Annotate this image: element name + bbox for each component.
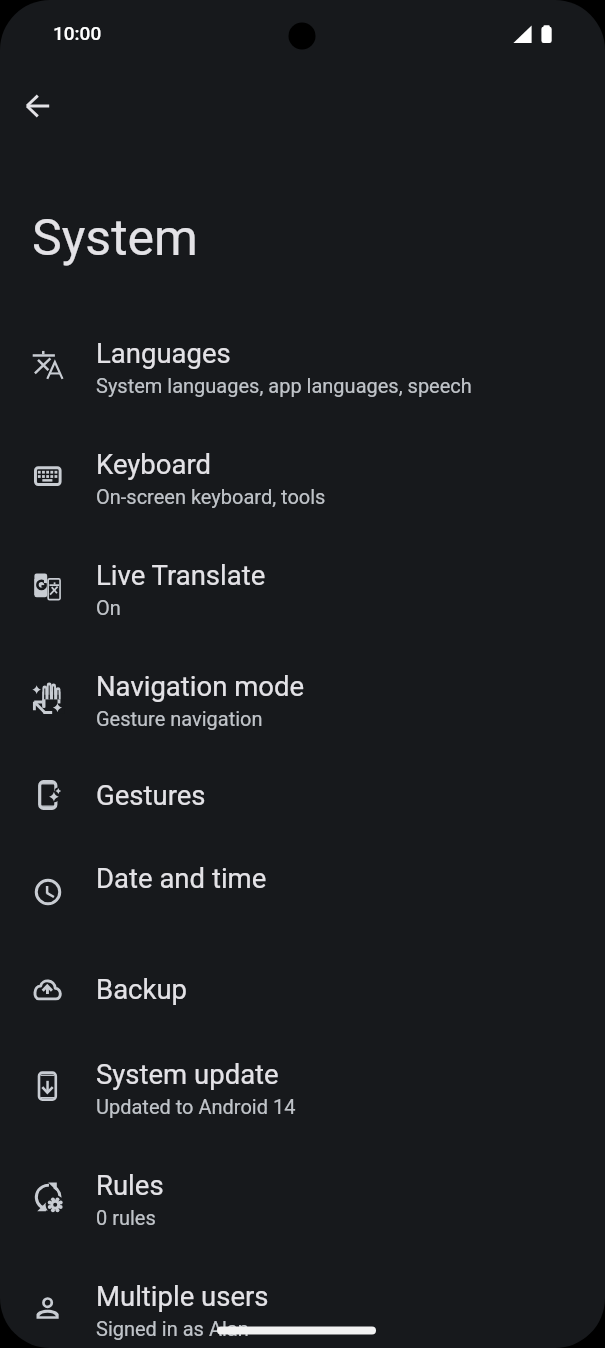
staticText: 0 rules <box>96 1206 156 1229</box>
staticText: System languages, app languages, speech <box>96 374 472 397</box>
staticText: Rules <box>96 1169 164 1201</box>
button[interactable]: Date and time <box>0 836 605 947</box>
staticText: On-screen keyboard, tools <box>96 485 326 508</box>
button[interactable]: System update <box>0 1030 605 1141</box>
staticText: Navigation mode <box>96 670 305 702</box>
staticText: System <box>32 209 198 268</box>
button[interactable]: Live Translate <box>0 531 605 642</box>
staticText: Signed in as Alan <box>96 1317 249 1340</box>
staticText: 10:00 <box>53 22 102 44</box>
staticText: On <box>96 596 121 619</box>
button[interactable]: Multiple users <box>0 1252 605 1348</box>
staticText: Keyboard <box>96 448 211 480</box>
staticText: Languages <box>96 337 231 369</box>
button[interactable]: Backup <box>0 947 605 1030</box>
button[interactable]: Languages <box>0 309 605 420</box>
button[interactable]: Back <box>14 82 62 130</box>
button[interactable]: Navigation mode <box>0 642 605 753</box>
button[interactable]: Rules <box>0 1141 605 1252</box>
staticText: Date and time <box>96 862 267 894</box>
staticText: Gestures <box>96 779 206 811</box>
staticText: Multiple users <box>96 1280 269 1312</box>
staticText: System update <box>96 1058 279 1090</box>
staticText: Gesture navigation <box>96 707 263 730</box>
staticText: Backup <box>96 973 188 1005</box>
button[interactable]: Keyboard <box>0 420 605 531</box>
button[interactable]: Gestures <box>0 753 605 836</box>
staticText: Updated to Android 14 <box>96 1095 296 1118</box>
staticText: Live Translate <box>96 559 266 591</box>
